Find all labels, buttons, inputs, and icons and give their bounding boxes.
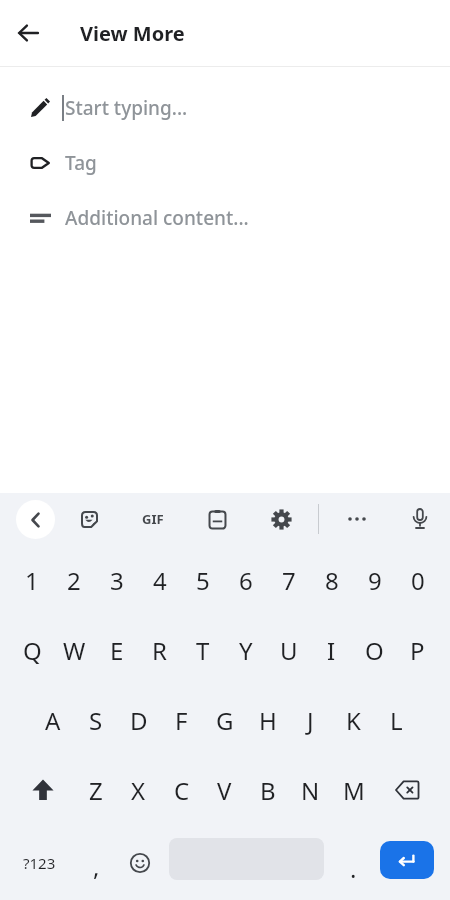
staticText: Y: [239, 634, 253, 667]
button[interactable]: [197, 499, 237, 539]
button[interactable]: 1: [11, 545, 53, 615]
button[interactable]: V: [203, 755, 246, 825]
staticText: C: [174, 774, 190, 807]
staticText: 3: [110, 564, 124, 597]
staticText: P: [410, 634, 425, 667]
button[interactable]: ?123: [11, 825, 75, 900]
button[interactable]: I: [310, 615, 353, 685]
button[interactable]: 7: [267, 545, 310, 615]
staticText: Z: [89, 774, 103, 807]
button[interactable]: 6: [224, 545, 267, 615]
staticText: 4: [153, 564, 167, 597]
button[interactable]: 9: [353, 545, 396, 615]
button[interactable]: D: [117, 685, 160, 755]
staticText: Additional content...: [65, 205, 249, 231]
staticText: W: [63, 634, 86, 667]
staticText: E: [110, 634, 124, 667]
button[interactable]: G: [203, 685, 246, 755]
button[interactable]: K: [332, 685, 375, 755]
button[interactable]: [380, 841, 434, 879]
button[interactable]: 3: [95, 545, 138, 615]
button[interactable]: 4: [138, 545, 181, 615]
staticText: Start typing...: [65, 95, 188, 121]
button[interactable]: [261, 499, 301, 539]
button[interactable]: GIF: [133, 499, 173, 539]
button[interactable]: 2: [53, 545, 95, 615]
button[interactable]: [118, 825, 161, 900]
button[interactable]: 5: [181, 545, 224, 615]
button[interactable]: [16, 500, 55, 539]
staticText: V: [217, 774, 232, 807]
staticText: 9: [368, 564, 382, 597]
staticText: 6: [239, 564, 253, 597]
staticText: O: [365, 634, 384, 667]
button[interactable]: O: [353, 615, 396, 685]
button[interactable]: Z: [74, 755, 117, 825]
staticText: 0: [411, 564, 425, 597]
staticText: F: [175, 704, 188, 737]
staticText: 8: [325, 564, 339, 597]
staticText: Tag: [65, 150, 97, 176]
staticText: G: [216, 704, 234, 737]
button[interactable]: E: [95, 615, 138, 685]
button[interactable]: Additional content...: [0, 190, 450, 245]
staticText: ,: [93, 850, 100, 883]
button[interactable]: Tag: [0, 135, 450, 190]
staticText: .: [350, 852, 357, 885]
button[interactable]: B: [246, 755, 289, 825]
staticText: S: [89, 704, 103, 737]
staticText: D: [130, 704, 148, 737]
staticText: K: [346, 704, 361, 737]
staticText: M: [343, 774, 365, 807]
button[interactable]: [400, 499, 440, 539]
button[interactable]: L: [375, 685, 418, 755]
button[interactable]: U: [267, 615, 310, 685]
button[interactable]: J: [289, 685, 332, 755]
staticText: H: [259, 704, 277, 737]
button[interactable]: Y: [224, 615, 267, 685]
button[interactable]: Start typing...: [0, 80, 450, 135]
button[interactable]: .: [332, 825, 375, 900]
button[interactable]: ,: [75, 825, 118, 900]
button[interactable]: R: [138, 615, 181, 685]
staticText: 1: [25, 564, 39, 597]
button[interactable]: P: [396, 615, 439, 685]
staticText: View More: [80, 20, 185, 47]
button[interactable]: N: [289, 755, 332, 825]
staticText: X: [131, 774, 146, 807]
button[interactable]: A: [32, 685, 74, 755]
staticText: J: [307, 704, 314, 737]
button[interactable]: C: [160, 755, 203, 825]
staticText: U: [280, 634, 298, 667]
button[interactable]: X: [117, 755, 160, 825]
button[interactable]: 8: [310, 545, 353, 615]
button[interactable]: [69, 499, 109, 539]
button[interactable]: Q: [11, 615, 53, 685]
button[interactable]: [0, 5, 56, 61]
staticText: I: [327, 634, 336, 667]
staticText: A: [45, 704, 61, 737]
staticText: Q: [23, 634, 42, 667]
staticText: 5: [196, 564, 210, 597]
staticText: T: [196, 634, 210, 667]
staticText: 7: [282, 564, 296, 597]
button[interactable]: H: [246, 685, 289, 755]
button[interactable]: W: [53, 615, 95, 685]
staticText: GIF: [142, 510, 164, 528]
staticText: N: [301, 774, 320, 807]
staticText: B: [260, 774, 276, 807]
staticText: ?123: [23, 853, 56, 873]
button[interactable]: [337, 499, 377, 539]
button[interactable]: S: [74, 685, 117, 755]
staticText: R: [152, 634, 167, 667]
button[interactable]: M: [332, 755, 375, 825]
button[interactable]: [375, 755, 439, 825]
staticText: 2: [67, 564, 81, 597]
staticText: L: [390, 704, 403, 737]
button[interactable]: F: [160, 685, 203, 755]
button[interactable]: T: [181, 615, 224, 685]
button[interactable]: [11, 755, 74, 825]
button[interactable]: 0: [396, 545, 439, 615]
